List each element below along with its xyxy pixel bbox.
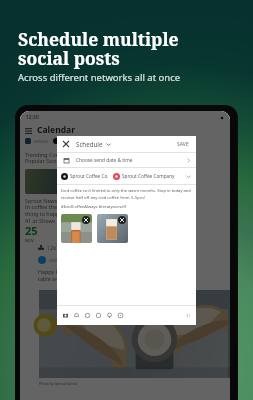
button[interactable]: Schedule [76, 138, 111, 150]
button[interactable]: Add emoji [71, 310, 82, 321]
button[interactable]: Choose send date & time [61, 153, 191, 167]
button[interactable]: Close [61, 139, 71, 149]
button[interactable]: Sprout Coffee Co. [61, 168, 191, 184]
staticText: 25 [25, 223, 38, 238]
button[interactable]: Add shield [93, 310, 104, 321]
button[interactable]: Add link [115, 310, 126, 321]
staticText: Choose send date & time [76, 157, 133, 164]
staticText: 1.2k [47, 245, 56, 251]
button[interactable]: Add location [104, 310, 115, 321]
staticText: SAVE [177, 141, 189, 148]
staticText: Photo by Sprout Social [39, 381, 77, 386]
staticText: Sprout Coffee Company [122, 173, 175, 179]
staticText: Calendar [37, 124, 75, 136]
staticText: Iced coffee isn't limited to only the wa… [61, 188, 191, 200]
staticText: NOV [25, 238, 34, 243]
button[interactable]: Remove image [118, 216, 126, 224]
staticText: Schedule [76, 140, 103, 148]
button[interactable]: Add photo [60, 310, 71, 321]
staticText: Across different networks all at once [18, 71, 181, 84]
staticText: Schedule multiple social posts [18, 27, 179, 70]
staticText: ↓ [82, 227, 87, 233]
staticText: 12:30 [26, 114, 39, 121]
staticText: #IcedCoffeeAlways #treatyourself [61, 204, 126, 210]
button[interactable]: SAVE [175, 139, 191, 150]
staticText: Trending Content Popular Social Posts [25, 151, 76, 165]
button[interactable]: Add tag [82, 310, 93, 321]
staticText: Happy Friday! Make table and... [38, 268, 88, 282]
staticText: Sprout Coffee Co. [70, 173, 109, 179]
staticText: 31 [186, 313, 191, 318]
staticText: Sprout News In coffee the be thing to ha… [25, 197, 65, 225]
button[interactable]: Remove image [82, 216, 90, 224]
